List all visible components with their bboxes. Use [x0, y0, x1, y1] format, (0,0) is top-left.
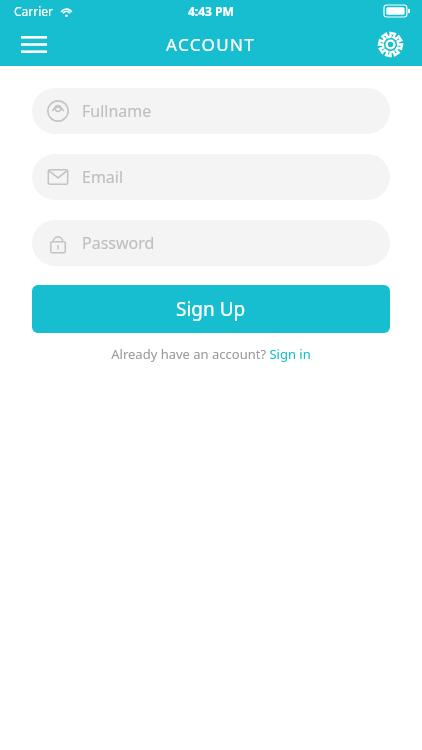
button[interactable]: Email — [32, 154, 390, 200]
staticText: 4:43 PM — [188, 3, 234, 19]
button[interactable]: Sign Up — [32, 285, 390, 333]
staticText: Fullname — [82, 100, 152, 122]
staticText: Already have an account? Sign in — [111, 345, 311, 363]
button[interactable]: Fullname — [32, 88, 390, 134]
staticText: ACCOUNT — [166, 33, 256, 56]
staticText: Carrier — [14, 3, 54, 19]
button[interactable]: Password — [32, 220, 390, 266]
button[interactable]: Settings — [368, 22, 412, 66]
staticText: Sign Up — [176, 296, 246, 322]
button[interactable]: Already have an account? Sign in — [111, 345, 311, 363]
staticText: Password — [82, 232, 155, 254]
staticText: Email — [82, 166, 124, 188]
button[interactable]: Menu — [12, 22, 56, 66]
